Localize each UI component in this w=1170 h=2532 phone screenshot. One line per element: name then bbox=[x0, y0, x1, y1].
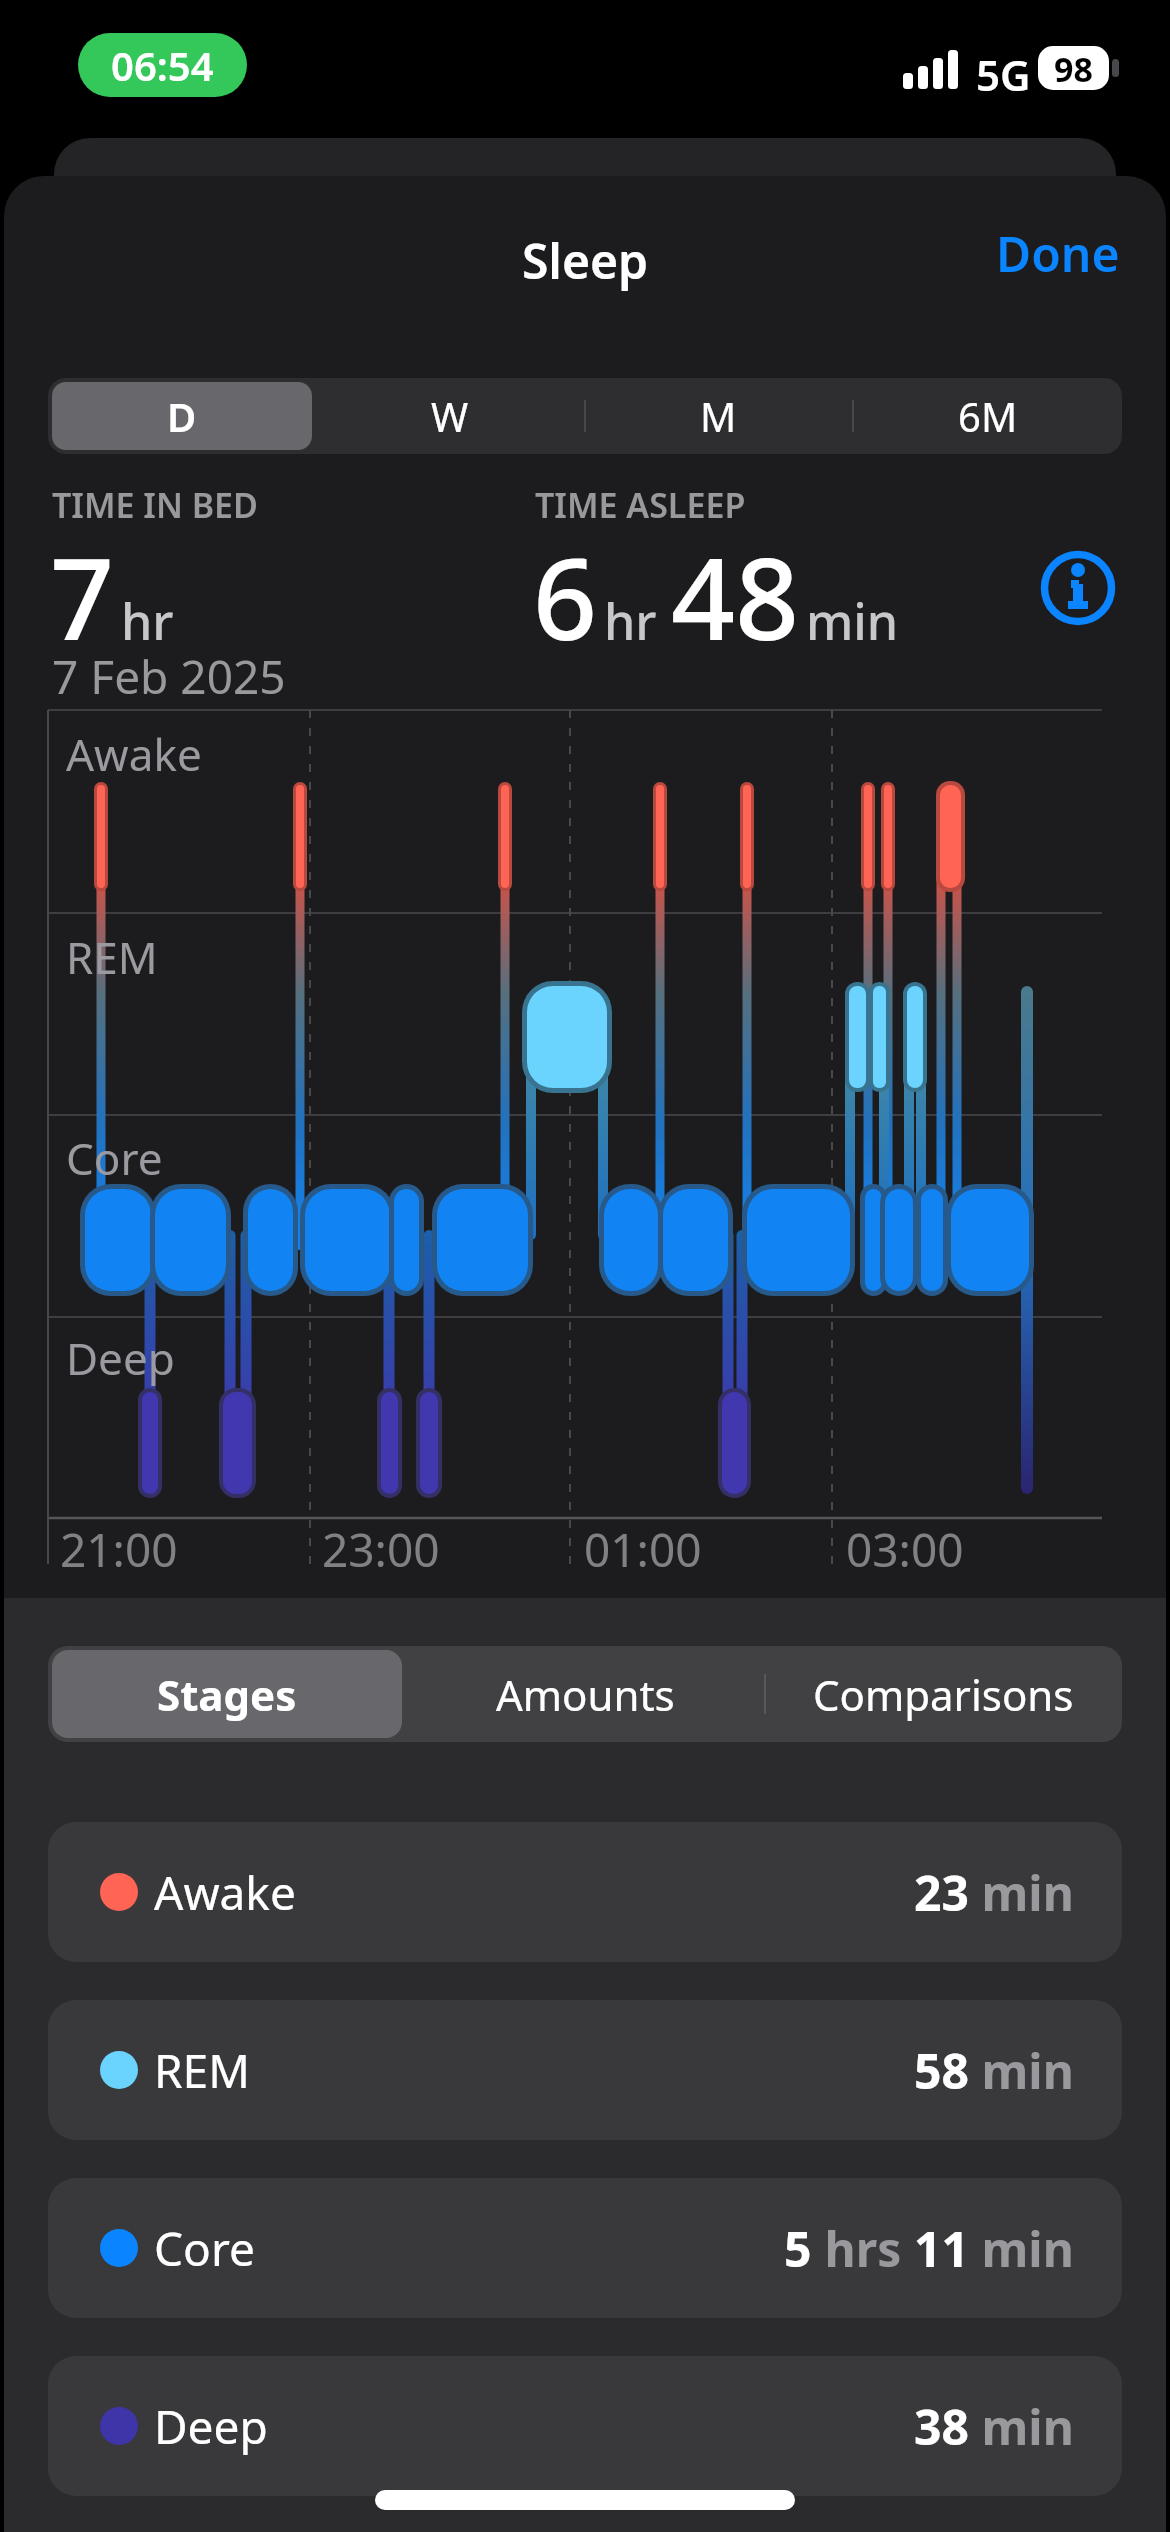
staticText: 7 Feb 2025 bbox=[52, 645, 286, 708]
staticText: min bbox=[806, 587, 899, 655]
button[interactable] bbox=[1041, 551, 1115, 625]
staticText: min bbox=[969, 2038, 1074, 2103]
staticText: REM bbox=[66, 927, 158, 987]
staticText: TIME IN BED bbox=[52, 482, 258, 528]
button[interactable]: Core bbox=[48, 2178, 1122, 2318]
staticText: hr bbox=[121, 587, 174, 655]
button[interactable]: Deep bbox=[48, 2356, 1122, 2496]
staticText: 21:00 bbox=[60, 1518, 178, 1581]
staticText: 7 bbox=[50, 520, 115, 673]
staticText: REM bbox=[154, 2039, 250, 2102]
staticText: Stages bbox=[157, 1666, 297, 1723]
button[interactable]: W bbox=[320, 382, 580, 450]
button[interactable]: D bbox=[52, 382, 312, 450]
staticText: hr bbox=[604, 587, 657, 655]
staticText: 23 bbox=[914, 1860, 969, 1925]
staticText: 6 bbox=[533, 520, 598, 673]
staticText: Amounts bbox=[496, 1666, 675, 1723]
button[interactable]: M bbox=[588, 382, 849, 450]
staticText: 11 bbox=[914, 2216, 969, 2281]
staticText: Awake bbox=[154, 1861, 296, 1924]
staticText: 6M bbox=[958, 389, 1018, 443]
staticText: Awake bbox=[66, 724, 202, 784]
staticText: 01:00 bbox=[584, 1518, 702, 1581]
staticText: 98 bbox=[1054, 46, 1093, 90]
staticText: TIME ASLEEP bbox=[535, 482, 746, 528]
staticText: M bbox=[700, 389, 737, 443]
staticText: 48 bbox=[671, 520, 800, 673]
staticText: Comparisons bbox=[813, 1666, 1074, 1723]
staticText: D bbox=[167, 389, 197, 443]
staticText: Sleep bbox=[0, 228, 1170, 293]
staticText: Deep bbox=[66, 1328, 175, 1388]
staticText: min bbox=[969, 1860, 1074, 1925]
button[interactable]: 6M bbox=[857, 382, 1118, 450]
button[interactable]: Done bbox=[970, 218, 1130, 288]
staticText: 23:00 bbox=[322, 1518, 440, 1581]
staticText: 5 bbox=[784, 2216, 812, 2281]
staticText: 58 bbox=[914, 2038, 969, 2103]
staticText: 03:00 bbox=[846, 1518, 964, 1581]
staticText: Core bbox=[66, 1128, 163, 1188]
button[interactable]: Awake bbox=[48, 1822, 1122, 1962]
staticText: min bbox=[969, 2216, 1074, 2281]
staticText: hrs bbox=[812, 2216, 914, 2281]
staticText: Done bbox=[996, 221, 1120, 286]
button[interactable]: Amounts bbox=[410, 1650, 760, 1738]
button[interactable]: Stages bbox=[52, 1650, 402, 1738]
staticText: min bbox=[969, 2394, 1074, 2459]
staticText: W bbox=[431, 389, 469, 443]
staticText: 38 bbox=[914, 2394, 969, 2459]
button[interactable]: REM bbox=[48, 2000, 1122, 2140]
button[interactable]: 06:54 bbox=[78, 33, 247, 97]
staticText: Core bbox=[154, 2217, 255, 2280]
staticText: 06:54 bbox=[111, 38, 214, 92]
button[interactable]: Comparisons bbox=[768, 1650, 1118, 1738]
staticText: Deep bbox=[154, 2395, 268, 2458]
staticText: 5G bbox=[976, 46, 1031, 103]
